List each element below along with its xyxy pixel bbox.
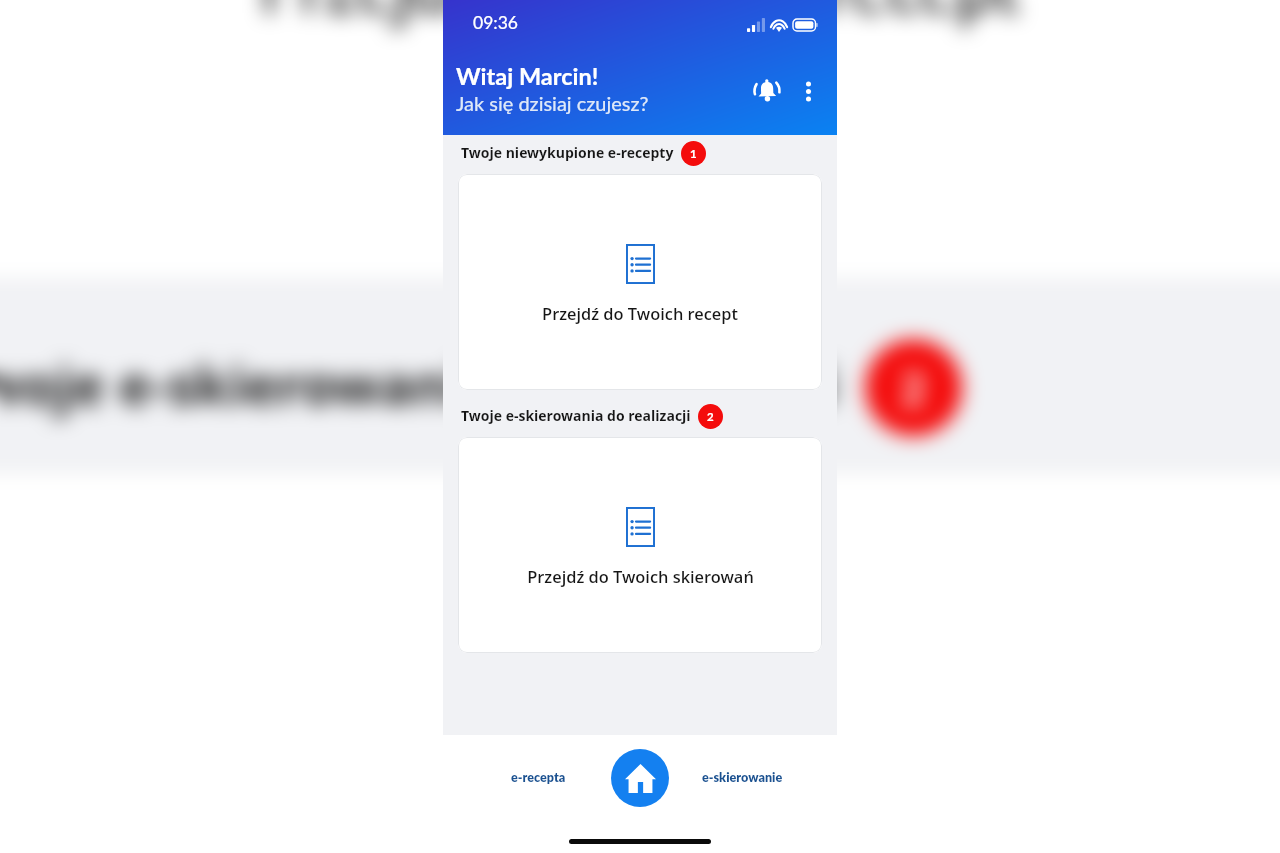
button[interactable]: e-recepta — [495, 759, 581, 795]
button[interactable]: Przejdź do Twoich recept — [458, 174, 822, 390]
staticText: Twoje niewykupione e-recepty — [461, 143, 674, 162]
staticText: Twoje e-skierowania do realizacji — [0, 347, 838, 421]
staticText: Twoje e-skierowania do realizacji — [461, 406, 691, 425]
staticText: Przejdź do Twoich skierowań — [527, 565, 754, 587]
button[interactable]: Przejdź do Twoich skierowań — [458, 437, 822, 653]
button[interactable]: Przejdź do Twoich skierowań — [0, 467, 1280, 853]
staticText: Jak się dzisiaj czujesz? — [456, 91, 649, 115]
button[interactable]: Notifications — [745, 69, 789, 113]
staticText: 2 — [900, 362, 927, 417]
button[interactable]: Home — [611, 749, 669, 807]
staticText: Przejdź do Twoich recept — [260, 0, 1020, 29]
staticText: 1 — [690, 147, 697, 161]
staticText: e-skierowanie — [702, 770, 783, 785]
button[interactable]: More options — [789, 72, 827, 110]
button[interactable]: e-skierowanie — [695, 759, 789, 795]
staticText: 09:36 — [473, 12, 518, 33]
staticText: Witaj Marcin! — [456, 62, 599, 90]
staticText: Przejdź do Twoich recept — [542, 302, 738, 324]
staticText: e-recepta — [511, 770, 566, 785]
staticText: 2 — [707, 410, 714, 424]
button[interactable]: Przejdź do Twoich recept — [0, 0, 1280, 285]
